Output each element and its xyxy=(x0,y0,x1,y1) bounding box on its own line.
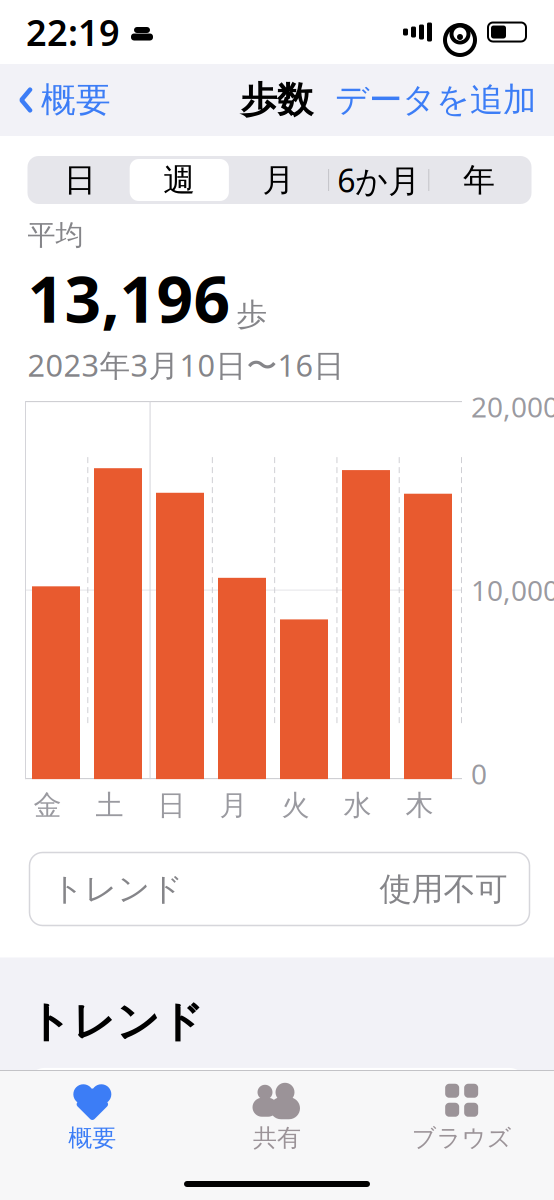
button[interactable]: 共有 xyxy=(185,1073,369,1153)
staticText: 歩 xyxy=(236,296,267,333)
staticText: 使用不可 xyxy=(379,869,507,909)
staticText: 木 xyxy=(405,788,433,822)
button[interactable]: 週 xyxy=(130,159,229,201)
staticText: 5週間で上向きのトレンド xyxy=(49,1139,465,1200)
staticText: 2023年3月10日〜16日 xyxy=(27,344,344,385)
staticText: 概要 xyxy=(41,79,111,121)
staticText: トレンド xyxy=(28,995,204,1048)
staticText: 週 xyxy=(163,160,195,200)
button[interactable]: 概要 xyxy=(18,73,111,127)
button[interactable]: 6か月 xyxy=(329,159,428,201)
staticText: 火 xyxy=(281,788,309,822)
button[interactable]: 月 xyxy=(229,159,328,201)
staticText: トレンド xyxy=(51,869,183,909)
button[interactable]: 年 xyxy=(429,159,528,201)
staticText: 日 xyxy=(157,788,185,822)
button[interactable]: 日 xyxy=(30,159,130,201)
staticText: データを追加 xyxy=(335,79,536,120)
staticText: 月 xyxy=(262,160,294,200)
staticText: 金 xyxy=(33,788,61,822)
button[interactable]: データを追加 xyxy=(335,73,536,126)
button[interactable]: トレンド xyxy=(29,852,529,925)
staticText: 13,196 xyxy=(27,255,230,340)
staticText: 0 xyxy=(471,755,487,792)
staticText: 22:19 xyxy=(26,8,120,56)
staticText: 土 xyxy=(95,788,123,822)
staticText: 歩数 xyxy=(75,1088,139,1127)
button[interactable]: 歩数 xyxy=(27,1068,527,1200)
staticText: 水 xyxy=(343,788,371,822)
staticText: 10,000 xyxy=(471,571,554,609)
staticText: 月 xyxy=(219,788,247,822)
staticText: 平均 xyxy=(27,218,83,252)
staticText: 共有 xyxy=(253,1123,301,1153)
staticText: ブラウズ xyxy=(412,1123,512,1153)
staticText: 6か月 xyxy=(337,159,420,201)
staticText: 概要 xyxy=(68,1123,116,1153)
staticText: 年 xyxy=(463,160,495,200)
staticText: 20,000 xyxy=(471,388,554,425)
button[interactable]: 概要 xyxy=(0,1073,185,1153)
staticText: 歩数 xyxy=(241,78,313,122)
button[interactable]: ブラウズ xyxy=(369,1073,554,1153)
staticText: 日 xyxy=(64,160,96,200)
